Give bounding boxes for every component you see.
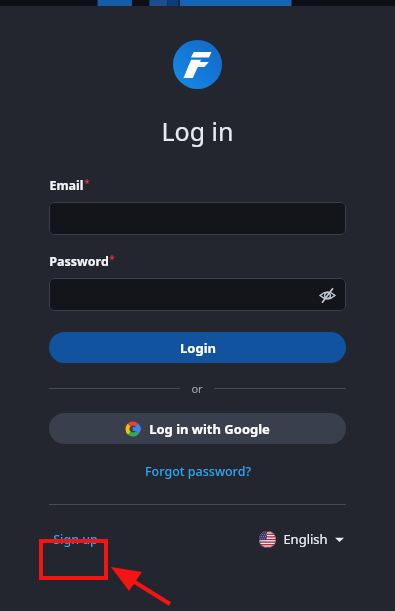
button[interactable]: Sign up [49, 528, 102, 551]
button[interactable]: Show password [316, 284, 338, 306]
staticText: English [283, 530, 328, 548]
staticText: Log in with Google [149, 420, 270, 438]
staticText: Email [49, 177, 84, 194]
staticText: Password [49, 253, 109, 270]
button[interactable]: Login [49, 332, 346, 363]
button[interactable]: English [257, 527, 346, 551]
staticText: Sign up [53, 531, 98, 548]
staticText: Log in [161, 114, 234, 148]
button[interactable]: Log in with Google [49, 413, 346, 444]
button[interactable]: Show password [49, 278, 346, 311]
staticText: Forgot password? [145, 463, 251, 480]
button[interactable]: Forgot password? [141, 461, 255, 482]
staticText: * [109, 252, 115, 266]
staticText: or [191, 381, 203, 396]
button[interactable] [49, 202, 346, 235]
staticText: * [84, 176, 90, 190]
staticText: Login [180, 339, 216, 357]
